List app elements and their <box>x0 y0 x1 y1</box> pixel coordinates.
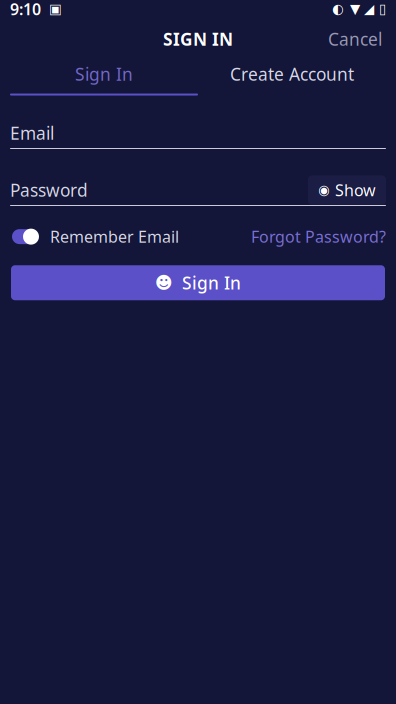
staticText: Sign In <box>182 271 241 294</box>
staticText: ☻ <box>155 273 173 293</box>
staticText: Forgot Password? <box>251 226 386 247</box>
staticText: ◐ <box>332 1 344 16</box>
button[interactable]: Sign In <box>10 58 198 92</box>
staticText: Password <box>10 178 88 201</box>
staticText: ▣ <box>49 1 62 16</box>
staticText: ▯ <box>379 1 386 16</box>
staticText: Remember Email <box>50 226 179 247</box>
staticText: 9:10 <box>10 0 41 20</box>
button[interactable]: ◉ <box>308 175 386 205</box>
staticText: Email <box>10 121 54 144</box>
staticText: Sign In <box>75 62 133 85</box>
button[interactable]: Cancel <box>318 21 392 56</box>
staticText: ◉ <box>318 182 330 197</box>
staticText: ◢ <box>364 1 374 16</box>
staticText: Cancel <box>328 27 382 50</box>
button[interactable]: ☻ <box>11 265 385 300</box>
staticText: Create Account <box>230 62 354 85</box>
staticText: SIGN IN <box>163 27 233 50</box>
staticText: ▼ <box>350 1 360 16</box>
button[interactable]: Create Account <box>198 58 386 92</box>
button[interactable]: Forgot Password? <box>241 220 386 253</box>
staticText: Show <box>335 179 376 201</box>
button[interactable]: Remember Email <box>10 220 179 253</box>
